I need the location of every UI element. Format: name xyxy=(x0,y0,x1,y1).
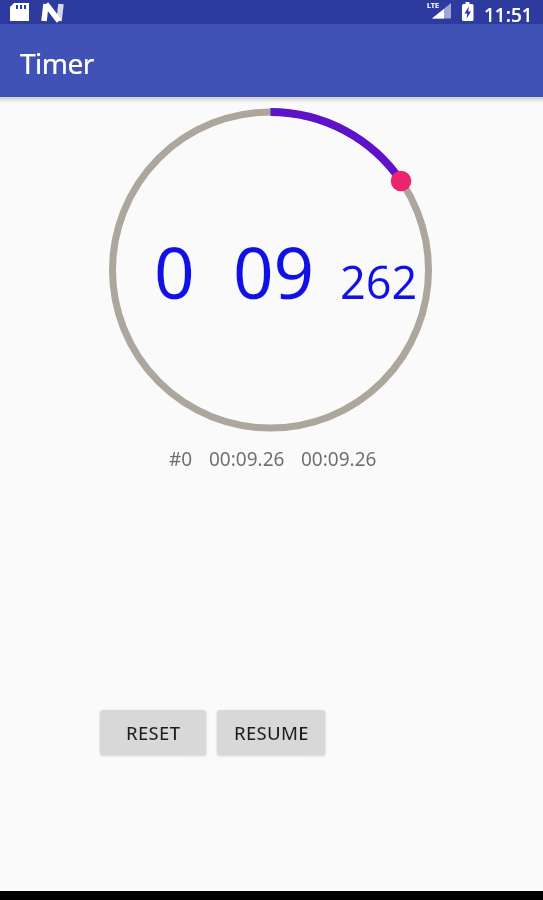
staticText: Timer xyxy=(20,44,94,82)
staticText: 11:51 xyxy=(484,2,533,26)
staticText: RESUME xyxy=(234,720,309,745)
button[interactable]: RESET xyxy=(100,710,206,755)
button[interactable]: RESUME xyxy=(217,710,325,755)
staticText: 0 xyxy=(154,223,195,320)
staticText: 262 xyxy=(340,251,418,312)
staticText: #0 xyxy=(169,446,193,472)
staticText: 00:09.26 xyxy=(301,446,377,472)
staticText: 00:09.26 xyxy=(209,446,285,472)
staticText: RESET xyxy=(126,720,181,745)
staticText: 09 xyxy=(233,223,315,320)
staticText: LTE xyxy=(427,0,440,10)
